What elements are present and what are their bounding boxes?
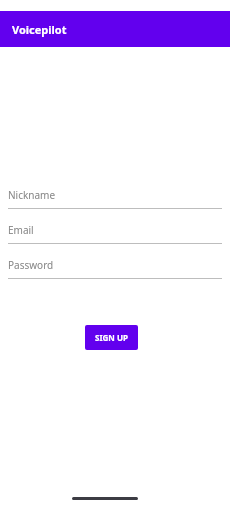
other: Home gesture handle (72, 497, 138, 500)
button[interactable]: SIGN UP (85, 325, 138, 350)
staticText: Password (8, 258, 54, 272)
button[interactable]: Nickname (8, 180, 222, 209)
staticText: SIGN UP (95, 332, 128, 343)
staticText: Email (8, 223, 34, 237)
staticText: Voicepilot (12, 22, 67, 37)
button[interactable]: Password (8, 250, 222, 279)
staticText: Nickname (8, 188, 56, 202)
button[interactable]: Email (8, 215, 222, 244)
